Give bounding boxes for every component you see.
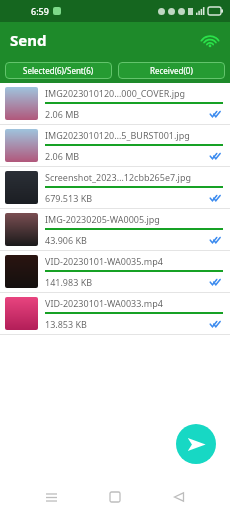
staticText: IMG2023010120…000_COVER.jpg [45,87,186,99]
button[interactable]: VID-20230101-WA0033.mp4 [0,293,230,335]
staticText: IMG-20230205-WA0005.jpg [45,213,160,225]
staticText: 2.06 MB [45,150,210,162]
button[interactable]: VID-20230101-WA0035.mp4 [0,251,230,293]
staticText: Send [10,30,47,50]
staticText: IMG2023010120…5_BURST001.jpg [45,129,190,141]
staticText: 2.06 MB [45,108,210,120]
button[interactable]: IMG2023010120…5_BURST001.jpg [0,125,230,167]
staticText: Received(0) [150,65,193,76]
staticText: Screenshot_2023…12cbb265e7.jpg [45,171,191,183]
button[interactable]: Selected(6)/Sent(6) [5,62,112,79]
staticText: VID-20230101-WA0035.mp4 [45,255,163,267]
button[interactable]: Wi-Fi [200,30,220,50]
button[interactable]: Screenshot_2023…12cbb265e7.jpg [0,167,230,209]
staticText: 13.853 KB [45,318,210,330]
button[interactable]: IMG2023010120…000_COVER.jpg [0,83,230,125]
button[interactable]: Recents [38,484,64,510]
staticText: VID-20230101-WA0033.mp4 [45,297,163,309]
staticText: 141.983 KB [45,276,210,288]
button[interactable]: IMG-20230205-WA0005.jpg [0,209,230,251]
button[interactable]: Home [102,484,128,510]
staticText: 43.906 KB [45,234,210,246]
staticText: 6:59 [31,5,49,17]
button[interactable]: Send [176,424,216,464]
button[interactable]: Back [166,484,192,510]
staticText: Selected(6)/Sent(6) [23,65,94,76]
staticText: 679.513 KB [45,192,210,204]
button[interactable]: Received(0) [118,62,225,79]
